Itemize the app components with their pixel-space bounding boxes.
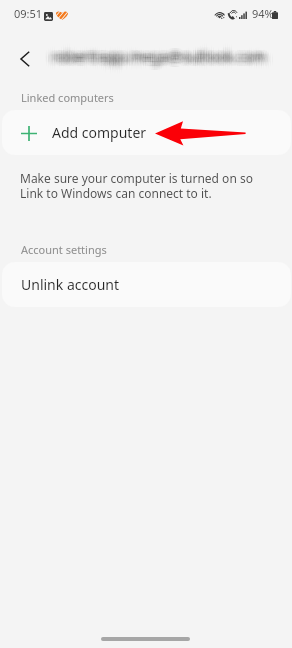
- staticText: Make sure your computer is turned on so …: [20, 170, 253, 201]
- staticText: 09:51: [14, 6, 43, 21]
- staticText: Add computer: [52, 123, 147, 142]
- button[interactable]: Back: [8, 42, 42, 76]
- staticText: Unlink account: [21, 275, 119, 294]
- staticText: Account settings: [21, 242, 107, 257]
- button[interactable]: Add computer: [2, 110, 291, 155]
- staticText: 94%: [252, 6, 274, 21]
- staticText: Linked computers: [21, 90, 114, 105]
- button[interactable]: Unlink account: [2, 262, 291, 307]
